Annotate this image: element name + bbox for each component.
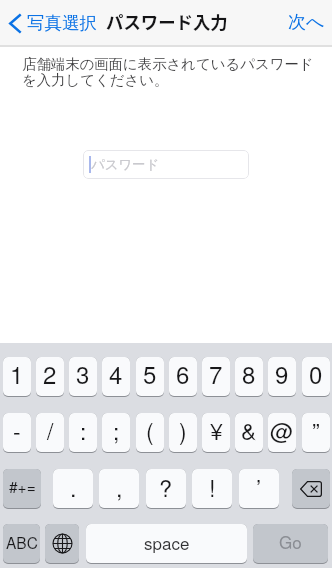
staticText: ’ bbox=[256, 470, 262, 504]
other: Backspace bbox=[300, 481, 322, 497]
staticText: . bbox=[70, 470, 77, 504]
staticText: 9 bbox=[275, 357, 289, 390]
staticText: 3 bbox=[76, 357, 90, 390]
staticText: 写真選択 bbox=[27, 12, 97, 34]
staticText: ) bbox=[179, 414, 187, 447]
staticText: - bbox=[13, 414, 21, 447]
button[interactable]: #+= bbox=[3, 469, 41, 508]
button[interactable]: ? bbox=[146, 469, 186, 508]
button[interactable]: 2 bbox=[36, 357, 64, 396]
button[interactable]: 写真選択 bbox=[5, 8, 103, 39]
staticText: パスワード bbox=[91, 156, 160, 173]
staticText: ! bbox=[209, 470, 216, 504]
button[interactable]: 9 bbox=[268, 357, 296, 396]
staticText: / bbox=[47, 414, 54, 447]
button[interactable]: : bbox=[69, 413, 97, 452]
button[interactable]: ; bbox=[102, 413, 130, 452]
button[interactable]: ABC bbox=[3, 524, 40, 563]
staticText: & bbox=[241, 414, 257, 447]
staticText: ¥ bbox=[210, 414, 223, 447]
staticText: ” bbox=[312, 414, 320, 447]
button[interactable]: Go bbox=[253, 524, 328, 563]
staticText: ; bbox=[113, 414, 120, 447]
button[interactable]: - bbox=[3, 413, 31, 452]
button[interactable]: 0 bbox=[302, 357, 330, 396]
staticText: 8 bbox=[242, 357, 256, 390]
staticText: ( bbox=[146, 414, 154, 447]
staticText: 4 bbox=[109, 357, 123, 390]
staticText: ABC bbox=[6, 531, 38, 553]
button[interactable]: / bbox=[36, 413, 64, 452]
button[interactable]: space bbox=[86, 524, 247, 563]
button[interactable]: Backspace bbox=[292, 469, 330, 508]
button[interactable]: 次へ bbox=[281, 8, 331, 39]
button[interactable]: ( bbox=[136, 413, 164, 452]
button[interactable]: ” bbox=[302, 413, 330, 452]
other: Next keyboard bbox=[52, 533, 73, 554]
staticText: @ bbox=[270, 414, 294, 447]
button[interactable]: . bbox=[53, 469, 93, 508]
staticText: 7 bbox=[209, 357, 223, 390]
button[interactable]: 5 bbox=[136, 357, 164, 396]
button[interactable]: 8 bbox=[235, 357, 263, 396]
staticText: 次へ bbox=[288, 11, 325, 34]
button[interactable]: 4 bbox=[102, 357, 130, 396]
button[interactable]: & bbox=[235, 413, 263, 452]
staticText: ? bbox=[159, 470, 173, 504]
button[interactable]: 1 bbox=[3, 357, 31, 396]
staticText: : bbox=[80, 414, 87, 447]
button[interactable]: ) bbox=[169, 413, 197, 452]
staticText: パスワード入力 bbox=[106, 9, 228, 34]
staticText: 2 bbox=[43, 357, 57, 390]
button[interactable]: @ bbox=[268, 413, 296, 452]
button[interactable]: 3 bbox=[69, 357, 97, 396]
staticText: #+= bbox=[9, 475, 36, 497]
button[interactable]: 6 bbox=[169, 357, 197, 396]
button[interactable]: ¥ bbox=[202, 413, 230, 452]
staticText: 店舗端末の画面に表示されているパスワードを入力してください。 bbox=[22, 55, 324, 89]
button[interactable]: ! bbox=[192, 469, 232, 508]
button[interactable]: Next keyboard bbox=[45, 524, 79, 563]
staticText: , bbox=[116, 470, 123, 504]
button[interactable]: 7 bbox=[202, 357, 230, 396]
button[interactable]: パスワード bbox=[83, 150, 249, 179]
staticText: Go bbox=[279, 529, 302, 553]
staticText: 6 bbox=[176, 357, 190, 390]
staticText: 0 bbox=[309, 357, 323, 390]
button[interactable]: , bbox=[99, 469, 139, 508]
staticText: space bbox=[144, 530, 190, 554]
staticText: 1 bbox=[10, 357, 24, 390]
button[interactable]: ’ bbox=[239, 469, 279, 508]
staticText: 5 bbox=[143, 357, 157, 390]
